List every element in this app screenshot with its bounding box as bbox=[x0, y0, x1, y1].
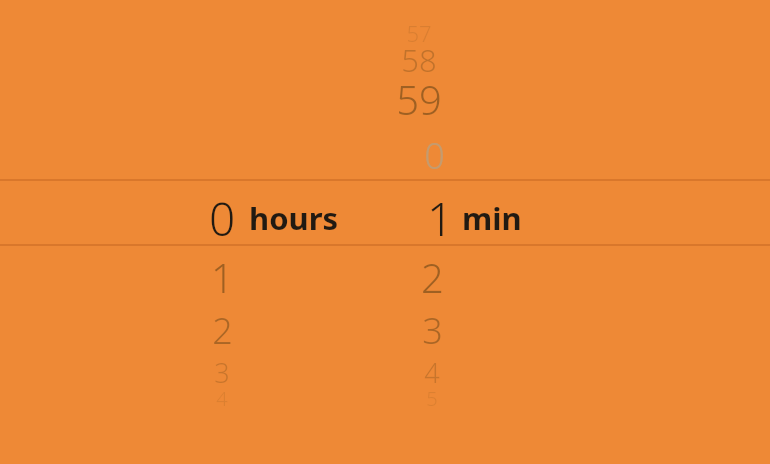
staticText: 2 bbox=[421, 250, 444, 304]
staticText: 3 bbox=[214, 354, 230, 391]
button[interactable]: 0 bbox=[334, 115, 534, 195]
button[interactable]: Hours picker bbox=[120, 0, 320, 464]
staticText: 3 bbox=[422, 306, 443, 355]
staticText: 4 bbox=[424, 354, 440, 391]
staticText: 57 bbox=[406, 18, 432, 48]
button[interactable]: 1 bbox=[380, 183, 500, 253]
button[interactable]: Minutes picker bbox=[360, 0, 560, 464]
staticText: 1 bbox=[427, 187, 454, 250]
button[interactable]: 2 bbox=[122, 290, 322, 370]
button[interactable]: 0 bbox=[162, 183, 282, 253]
staticText: 1 bbox=[211, 250, 234, 304]
button[interactable]: 58 bbox=[319, 20, 519, 100]
staticText: min bbox=[462, 197, 522, 239]
staticText: 4 bbox=[216, 385, 228, 412]
button[interactable]: 4 bbox=[332, 332, 532, 412]
button[interactable]: 3 bbox=[332, 290, 532, 370]
button[interactable]: 1 bbox=[122, 237, 322, 317]
button[interactable]: 57 bbox=[319, 0, 519, 73]
staticText: 59 bbox=[396, 72, 442, 126]
button[interactable]: hours bbox=[249, 193, 344, 243]
staticText: 2 bbox=[212, 306, 233, 355]
staticText: 5 bbox=[426, 385, 438, 412]
button[interactable]: 2 bbox=[332, 237, 532, 317]
staticText: hours bbox=[249, 197, 339, 239]
button[interactable]: min bbox=[462, 193, 532, 243]
staticText: 0 bbox=[424, 131, 445, 180]
button[interactable]: 59 bbox=[319, 59, 519, 139]
staticText: 58 bbox=[401, 39, 437, 81]
button[interactable]: 3 bbox=[122, 332, 322, 412]
staticText: 0 bbox=[209, 187, 236, 250]
